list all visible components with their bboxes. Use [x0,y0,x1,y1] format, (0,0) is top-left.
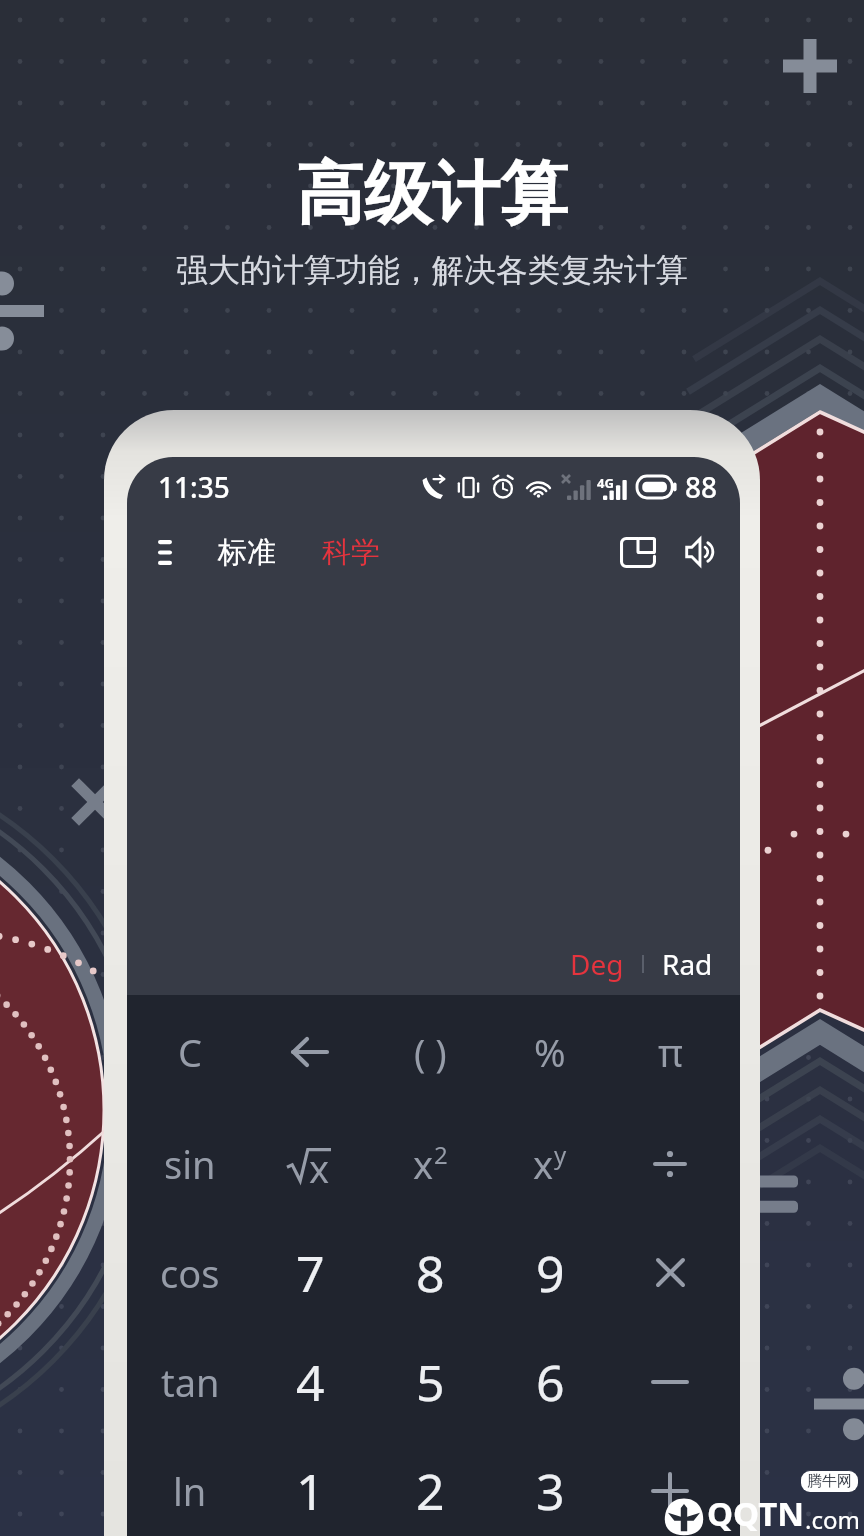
button[interactable]: 6 [490,1327,610,1436]
button[interactable]: Square root [250,1109,370,1218]
button[interactable]: Divide [610,1109,730,1218]
staticText: x [309,1142,330,1194]
staticText: π [658,1026,683,1078]
staticText: 8 [416,1239,445,1307]
staticText: 标准 [218,534,276,571]
button[interactable]: 标准 [210,528,284,577]
staticText: x [413,1138,434,1190]
staticText: 4G [597,474,614,492]
staticText: 7 [296,1239,325,1307]
staticText: C [178,1026,203,1078]
staticText: 3 [536,1457,565,1525]
staticText: 科学 [322,534,380,571]
button[interactable]: sin [130,1109,250,1218]
staticText: tan [161,1356,220,1408]
staticText: 4 [296,1348,325,1416]
staticText: 强大的计算功能，解决各类复杂计算 [176,250,688,290]
staticText: y [554,1138,567,1171]
button[interactable]: 8 [370,1218,490,1327]
button[interactable]: 9 [490,1218,610,1327]
staticText: Rad [662,945,713,983]
staticText: 88 [685,468,718,506]
staticText: 2 [416,1457,445,1525]
staticText: cos [160,1247,220,1299]
staticText: ( ) [414,1026,447,1078]
staticText: ln [173,1465,207,1517]
button[interactable]: Minus [610,1327,730,1436]
staticText: 高级计算 [296,152,568,238]
button[interactable]: ( ) [370,995,490,1109]
button[interactable]: x to the power y [490,1109,610,1218]
button[interactable]: x squared [370,1109,490,1218]
button[interactable]: 3 [490,1436,610,1536]
button[interactable]: Backspace [250,995,370,1109]
staticText: x [533,1138,554,1190]
button[interactable]: π [610,995,730,1109]
staticText: Deg [570,945,624,983]
staticText: 1 [296,1457,325,1525]
staticText: 9 [536,1239,565,1307]
button[interactable]: Sound [676,526,728,578]
staticText: .com [805,1503,860,1536]
button[interactable]: C [130,995,250,1109]
button[interactable]: Rad [656,941,719,987]
staticText: QQTN [707,1491,805,1536]
button[interactable]: 2 [370,1436,490,1536]
button[interactable]: Menu [143,530,187,574]
button[interactable]: 1 [250,1436,370,1536]
button[interactable]: Picture in picture [612,526,664,578]
button[interactable]: Deg [564,941,630,987]
button[interactable]: 5 [370,1327,490,1436]
button[interactable]: cos [130,1218,250,1327]
staticText: 6 [536,1348,565,1416]
button[interactable]: Multiply [610,1218,730,1327]
staticText: % [534,1026,566,1078]
staticText: sin [164,1138,216,1190]
button[interactable]: % [490,995,610,1109]
button[interactable]: 7 [250,1218,370,1327]
button[interactable]: Plus [610,1436,730,1536]
button[interactable]: 4 [250,1327,370,1436]
button[interactable]: 科学 [314,528,388,577]
button[interactable]: ln [130,1436,250,1536]
button[interactable]: tan [130,1327,250,1436]
staticText: 5 [416,1348,445,1416]
staticText: 腾牛网 [807,1472,852,1491]
staticText: 11:35 [158,468,230,506]
staticText: 2 [434,1138,448,1171]
